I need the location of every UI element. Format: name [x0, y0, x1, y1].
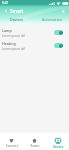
staticText: Favorites [6, 144, 18, 148]
button[interactable]: Automation [34, 15, 69, 24]
button[interactable]: Back [2, 7, 9, 14]
button[interactable]: Lamp [0, 26, 69, 39]
staticText: 9:41 [2, 1, 9, 5]
staticText: Heating [2, 41, 16, 46]
button[interactable]: Devices [0, 15, 34, 24]
button[interactable]: Rooms [23, 133, 46, 150]
button[interactable]: Devices [46, 133, 69, 150]
staticText: Automation [42, 17, 62, 22]
button[interactable]: Toggle [54, 43, 63, 48]
staticText: Devices [53, 145, 63, 149]
staticText: Smart [10, 8, 24, 14]
staticText: Lamp [2, 28, 12, 33]
button[interactable]: Heating [0, 39, 69, 52]
staticText: Lorem ipsum dol [2, 34, 25, 38]
staticText: Devices [10, 17, 24, 22]
button[interactable]: Toggle [54, 30, 63, 35]
staticText: Rooms [30, 144, 40, 148]
button[interactable]: Favorites [0, 133, 23, 150]
staticText: Lorem ipsum dol [2, 47, 25, 51]
